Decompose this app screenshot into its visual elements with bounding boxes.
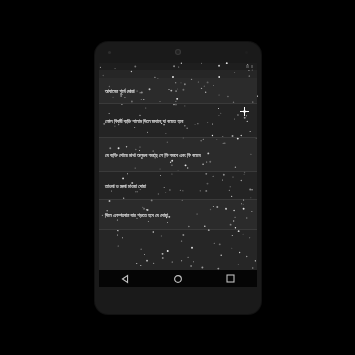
staticText: যে ব্যক্তি শোয়ে মাথা অনুভব করছে সে কি ক… (105, 152, 201, 159)
button[interactable]: কোন বিধর্মী ব্যক্তি সালাম দিলে জবাবে যা … (99, 104, 257, 138)
staticText: কোন বিধর্মী ব্যক্তি সালাম দিলে জবাবে যা … (105, 118, 184, 125)
staticText: দিনে একশতবার যার পড়তে হবে যে দোয়া (105, 212, 168, 219)
staticText: তাওবা ও ক্ষমা চাওয়া দোয়া (105, 183, 147, 190)
button[interactable]: Recent apps (204, 270, 257, 287)
staticText: আযানের পুর্বে দোয়া (105, 88, 135, 95)
button[interactable]: দিনে একশতবার যার পড়তে হবে যে দোয়া (99, 200, 257, 230)
button[interactable]: Home (151, 270, 204, 287)
button[interactable]: আযানের পুর্বে দোয়া (99, 78, 257, 104)
button[interactable]: তাওবা ও ক্ষমা চাওয়া দোয়া (99, 172, 257, 200)
button[interactable]: যে ব্যক্তি শোয়ে মাথা অনুভব করছে সে কি ক… (99, 138, 257, 172)
button[interactable]: Back (99, 270, 151, 287)
